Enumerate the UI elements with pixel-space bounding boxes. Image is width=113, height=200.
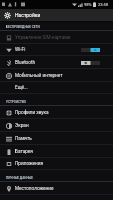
staticText: Мобильный интернет: [15, 73, 63, 79]
button[interactable]: Батарея: [0, 145, 113, 158]
staticText: 98%: [84, 2, 92, 7]
button[interactable]: Ещё...: [0, 81, 113, 94]
staticText: Приложения: [15, 161, 44, 167]
button[interactable]: Профили звука: [0, 106, 113, 119]
staticText: Память: [15, 136, 32, 142]
staticText: Профили звука: [15, 110, 49, 116]
staticText: ЛИЧНЫЕ ДАННЫЕ: [6, 176, 34, 180]
button[interactable]: Экран: [0, 119, 113, 132]
button[interactable]: Память: [0, 132, 113, 145]
staticText: Местоположение: [15, 186, 54, 192]
button[interactable]: Приложения: [0, 157, 113, 170]
staticText: Настройки: [15, 12, 41, 18]
staticText: Ещё...: [15, 85, 28, 91]
button[interactable]: Wi-Fi: [0, 43, 113, 56]
staticText: Wi-Fi: [15, 47, 26, 53]
button[interactable]: Управление SIM-картами: [0, 31, 113, 44]
staticText: УСТРОЙСТВО: [6, 100, 27, 104]
staticText: Bluetooth: [15, 60, 36, 66]
staticText: Управление SIM-картами: [15, 35, 71, 41]
staticText: 23:58: [98, 2, 108, 7]
staticText: Экран: [15, 123, 29, 129]
other: Настройки: [4, 12, 11, 19]
button[interactable]: Мобильный интернет: [0, 69, 113, 82]
button[interactable]: Bluetooth: [0, 56, 113, 69]
button[interactable]: Местоположение: [0, 182, 113, 195]
staticText: Батарея: [15, 149, 33, 155]
button[interactable]: Настройки: [4, 9, 113, 21]
staticText: БЕСПРОВОДНЫЕ СЕТИ: [6, 25, 40, 29]
